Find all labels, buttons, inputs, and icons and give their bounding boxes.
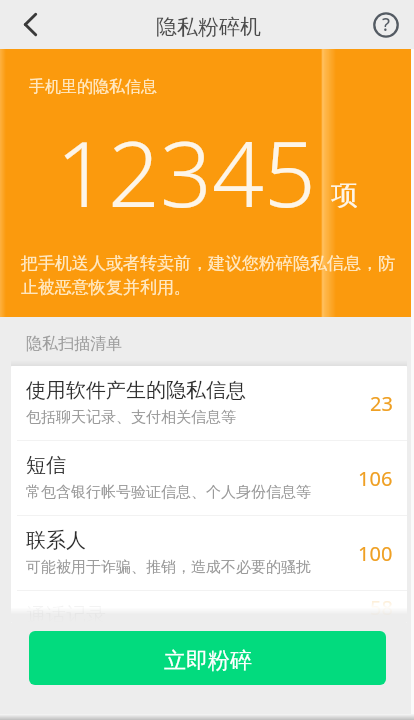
staticText: 12345 (56, 110, 316, 234)
button[interactable]: 短信 (11, 441, 407, 515)
staticText: ? (382, 12, 391, 37)
button[interactable]: 立即粉碎 (29, 631, 386, 685)
staticText: 通话记录 (26, 603, 106, 623)
staticText: 手机里的隐私信息 (29, 77, 157, 97)
staticText: 项 (331, 178, 358, 212)
staticText: 可能被用于诈骗、推销，造成不必要的骚扰 (26, 558, 311, 577)
staticText: 包括聊天记录、支付相关信息等 (26, 408, 236, 427)
staticText: 隐私粉碎机 (156, 14, 261, 40)
button[interactable]: 通话记录 (11, 591, 407, 623)
staticText: 106 (358, 465, 393, 492)
staticText: 立即粉碎 (164, 647, 252, 675)
staticText: 使用软件产生的隐私信息 (26, 378, 246, 403)
button[interactable]: 使用软件产生的隐私信息 (11, 366, 407, 440)
staticText: 常包含银行帐号验证信息、个人身份信息等 (26, 483, 311, 502)
staticText: 100 (358, 540, 393, 567)
button[interactable]: Back (0, 0, 60, 49)
button[interactable]: 联系人 (11, 516, 407, 590)
staticText: 联系人 (26, 528, 86, 553)
staticText: 23 (370, 390, 393, 417)
staticText: 隐私扫描清单 (26, 334, 122, 354)
button[interactable]: Help (358, 0, 414, 49)
staticText: 58 (370, 594, 393, 621)
staticText: 短信 (26, 453, 66, 478)
staticText: 把手机送人或者转卖前，建议您粉碎隐私信息，防止被恶意恢复并利用。 (21, 253, 399, 298)
